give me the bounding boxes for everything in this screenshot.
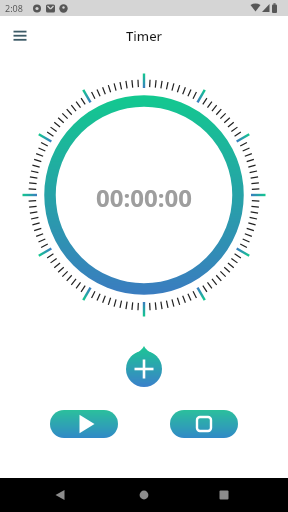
button[interactable] — [8, 24, 32, 48]
button[interactable] — [50, 410, 118, 438]
staticText: 2:08 — [5, 2, 23, 14]
button[interactable] — [48, 483, 72, 507]
staticText: Timer — [126, 27, 163, 45]
staticText: 00:00:00 — [96, 181, 192, 214]
button[interactable] — [126, 346, 162, 387]
button[interactable] — [132, 483, 156, 507]
button[interactable] — [212, 483, 236, 507]
button[interactable] — [170, 410, 238, 438]
